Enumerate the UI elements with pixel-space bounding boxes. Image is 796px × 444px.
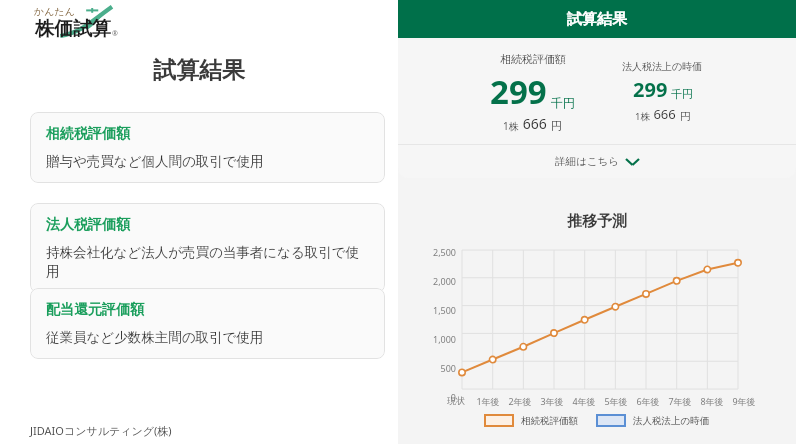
staticText: 千円 [551,95,575,110]
staticText: 配当還元評価額 [46,301,144,319]
staticText: 試算結果 [0,56,398,85]
staticText: 6年後 [632,395,664,407]
staticText: 円 [680,110,691,123]
staticText: 贈与や売買など個人間の取引で使用 [46,153,264,170]
staticText: 法人税法上の時価 [633,415,710,427]
staticText: 1株 [503,119,519,133]
staticText: 持株会社化など法人が売買の当事者になる取引で使用 [46,244,369,280]
button[interactable]: 法人税評価額 [30,203,385,293]
staticText: 1,500 [416,304,456,316]
staticText: 2,000 [416,275,456,287]
staticText: 299 [633,76,668,103]
staticText: 2,500 [416,246,456,258]
staticText: 1,000 [416,333,456,345]
button[interactable]: 相続税評価額 [30,112,385,183]
button[interactable]: 詳細はこちら [398,145,796,178]
staticText: 相続税評価額 [521,415,578,427]
staticText: 4年後 [568,395,600,407]
staticText: 299 [490,69,547,114]
staticText: 0 [416,391,456,403]
staticText: 9年後 [728,395,760,407]
staticText: 法人税法上の時価 [622,60,703,73]
staticText: 詳細はこちら [555,155,619,168]
staticText: 推移予測 [398,212,796,231]
staticText: かんたん [34,5,75,18]
staticText: 666 [519,114,551,133]
staticText: JIDAIOコンサルティング(株) [30,423,172,438]
staticText: 円 [551,119,562,133]
staticText: 株価試算 [35,17,111,41]
staticText: 相続税評価額 [500,52,566,66]
staticText: ® [112,29,118,39]
staticText: 1年後 [472,395,504,407]
staticText: 千円 [671,87,693,101]
staticText: 法人税評価額 [46,216,130,234]
staticText: 5年後 [600,395,632,407]
staticText: 1株 [635,110,650,123]
staticText: 試算結果 [567,10,627,29]
button[interactable]: 配当還元評価額 [30,288,385,359]
staticText: 相続税評価額 [46,125,130,143]
staticText: 現状 [440,395,472,406]
staticText: 従業員など少数株主間の取引で使用 [46,329,264,346]
staticText: 8年後 [696,395,728,407]
staticText: 2年後 [504,395,536,407]
staticText: 500 [416,362,456,374]
staticText: 3年後 [536,395,568,407]
staticText: 666 [650,105,680,123]
staticText: 7年後 [664,395,696,407]
